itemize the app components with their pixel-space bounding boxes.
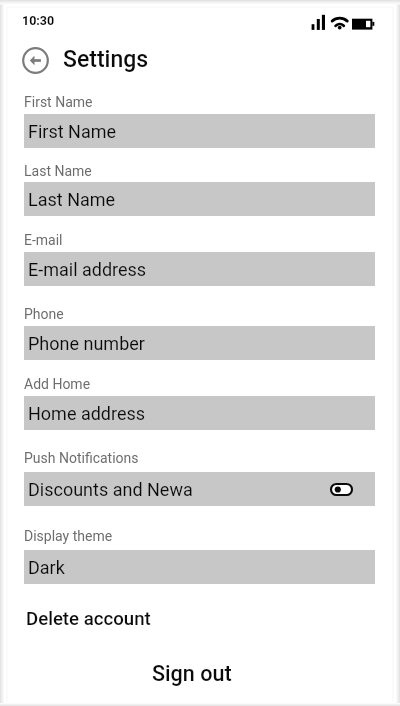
staticText: Sign out: [152, 661, 232, 686]
button[interactable]: Discounts and Newa: [24, 472, 375, 506]
staticText: E-mail address: [28, 259, 147, 280]
staticText: First Name: [28, 121, 117, 142]
staticText: Delete account: [26, 608, 151, 630]
staticText: First Name: [24, 94, 93, 110]
button[interactable]: Sign out: [7, 649, 392, 697]
staticText: Phone number: [28, 333, 145, 354]
staticText: Last Name: [24, 163, 92, 179]
staticText: Last Name: [28, 189, 116, 210]
button[interactable]: Toggle discount notifications: [330, 483, 353, 496]
button[interactable]: Last Name: [24, 182, 375, 216]
staticText: Discounts and Newa: [28, 479, 193, 500]
staticText: Home address: [28, 403, 146, 424]
button[interactable]: Dark: [24, 550, 375, 584]
button[interactable]: First Name: [24, 114, 375, 148]
button[interactable]: Home address: [24, 396, 375, 430]
button[interactable]: Delete account: [18, 601, 159, 637]
staticText: E-mail: [24, 232, 63, 248]
staticText: Push Notifications: [24, 450, 139, 466]
staticText: Dark: [28, 557, 65, 578]
staticText: Settings: [63, 46, 149, 73]
staticText: Add Home: [24, 376, 91, 392]
button[interactable]: Phone number: [24, 326, 375, 360]
button[interactable]: E-mail address: [24, 252, 375, 286]
staticText: Display theme: [24, 528, 113, 544]
staticText: 10:30: [22, 13, 55, 28]
button[interactable]: Back: [14, 39, 56, 81]
staticText: Phone: [24, 306, 64, 322]
